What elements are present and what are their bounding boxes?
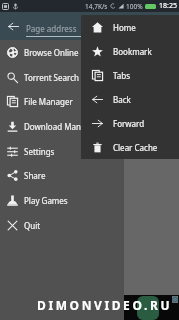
staticText: Settings — [24, 146, 55, 157]
button[interactable]: Quit — [0, 213, 124, 238]
staticText: File Manager — [24, 96, 73, 107]
button[interactable]: Play Games — [0, 188, 124, 213]
staticText: Torrent Search — [24, 72, 79, 83]
staticText: Forward — [113, 118, 145, 129]
staticText: Play Games — [24, 195, 68, 206]
staticText: Browse Online — [24, 47, 79, 58]
button[interactable]: Tabs — [81, 63, 179, 87]
staticText: Home — [113, 22, 136, 33]
button[interactable]: Share — [0, 163, 124, 188]
button[interactable]: Back — [81, 87, 179, 111]
staticText: 18:25 — [159, 1, 177, 11]
staticText: Download Manager — [24, 121, 99, 132]
button[interactable]: Download Manager — [0, 114, 124, 139]
staticText: Quit — [24, 220, 41, 231]
button[interactable]: File Manager — [0, 89, 124, 114]
staticText: 14,7K/s — [85, 2, 108, 11]
button[interactable]: Torrent Search — [0, 65, 124, 90]
staticText: Bookmark — [113, 46, 152, 57]
staticText: Back — [113, 94, 131, 105]
staticText: Share — [24, 170, 46, 181]
staticText: Page address — [26, 23, 77, 34]
button[interactable]: Back — [0, 12, 26, 40]
button[interactable]: Forward — [81, 111, 179, 135]
staticText: Tabs — [113, 70, 131, 81]
button[interactable]: Clear Cache — [81, 135, 179, 159]
button[interactable]: Bookmark — [81, 39, 179, 63]
button[interactable]: Browse Online — [0, 40, 124, 65]
staticText: Clear Cache — [113, 142, 158, 153]
staticText: 100% — [126, 2, 143, 11]
staticText: DIMONVIDEO.RU — [37, 297, 173, 313]
button[interactable]: Settings — [0, 139, 124, 164]
button[interactable]: Home — [81, 15, 179, 39]
